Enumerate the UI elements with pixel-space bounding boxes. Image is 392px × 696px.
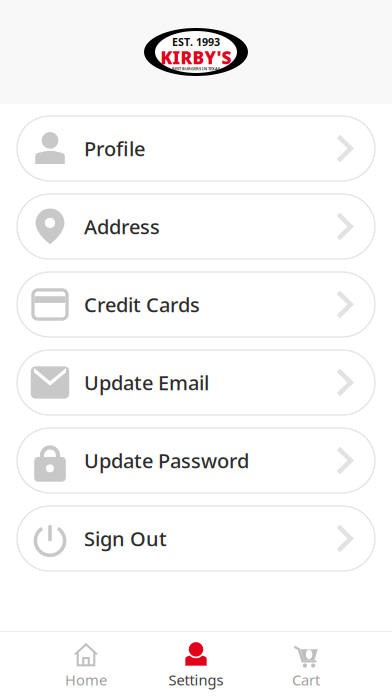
button[interactable]: Credit Cards xyxy=(17,272,375,337)
button[interactable]: Settings xyxy=(141,632,251,696)
staticText: Profile xyxy=(84,135,145,162)
staticText: EST. 1993 xyxy=(172,35,220,49)
button[interactable]: Cart xyxy=(251,632,361,696)
staticText: Update Password xyxy=(84,447,249,474)
button[interactable]: Home xyxy=(31,632,141,696)
staticText: BEST BURGERS IN TEXAS xyxy=(172,66,220,71)
staticText: Credit Cards xyxy=(84,291,200,318)
button[interactable]: Address xyxy=(17,194,375,259)
staticText: Cart xyxy=(292,670,320,689)
staticText: Sign Out xyxy=(84,525,167,552)
staticText: Address xyxy=(84,213,160,240)
button[interactable]: Sign Out xyxy=(17,506,375,571)
staticText: Update Email xyxy=(84,369,209,396)
button[interactable]: Profile xyxy=(17,116,375,181)
button[interactable]: Update Email xyxy=(17,350,375,415)
staticText: Settings xyxy=(168,670,223,689)
staticText: Home xyxy=(65,670,107,689)
button[interactable]: Update Password xyxy=(17,428,375,493)
staticText: KIRBY'S xyxy=(160,46,231,69)
